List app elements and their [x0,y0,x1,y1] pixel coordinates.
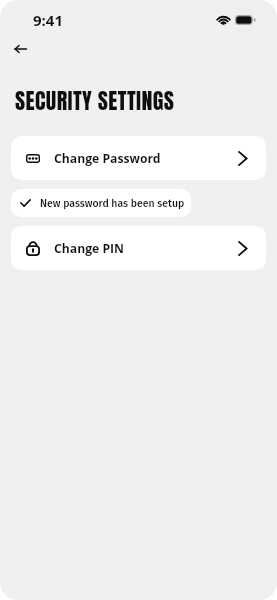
staticText: New password has been setup [40,197,185,210]
staticText: 9:41 [33,10,63,30]
button[interactable]: New password has been setup [11,189,191,217]
button[interactable]: Back [6,35,34,63]
staticText: SECURITY SETTINGS [15,84,175,117]
button[interactable]: Change PIN [11,226,266,270]
staticText: Change Password [54,150,161,167]
button[interactable]: Change Password [11,136,266,180]
staticText: Change PIN [54,240,124,257]
